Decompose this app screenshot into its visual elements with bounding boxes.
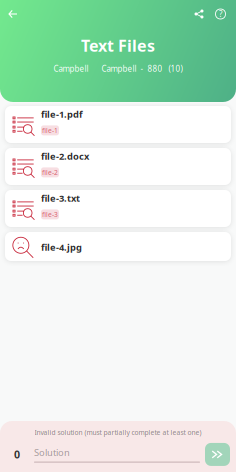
- staticText: Campbell - 880 (10): [101, 63, 182, 74]
- staticText: Text Files: [81, 35, 155, 56]
- button[interactable]: file-1.pdf: [5, 106, 231, 143]
- button[interactable]: Back: [2, 3, 24, 25]
- button[interactable]: file-4.jpg: [5, 232, 231, 261]
- button[interactable]: file-2.docx: [5, 148, 231, 185]
- staticText: ?: [219, 9, 222, 19]
- staticText: 0: [14, 447, 20, 461]
- button[interactable]: Share: [188, 3, 210, 25]
- staticText: file-2.docx: [41, 150, 89, 162]
- button[interactable]: Help: [210, 3, 231, 24]
- staticText: file-4.jpg: [41, 241, 82, 253]
- staticText: file-1.pdf: [41, 108, 83, 120]
- staticText: file-3.txt: [41, 192, 80, 204]
- staticText: Solution: [34, 446, 70, 459]
- staticText: Invalid solution (must partially complet…: [34, 428, 201, 437]
- staticText: file-2: [42, 168, 58, 177]
- staticText: Campbell: [53, 63, 88, 74]
- staticText: file-1: [42, 126, 58, 135]
- button[interactable]: Submit: [205, 443, 230, 466]
- button[interactable]: file-3.txt: [5, 190, 231, 227]
- staticText: file-3: [42, 210, 58, 219]
